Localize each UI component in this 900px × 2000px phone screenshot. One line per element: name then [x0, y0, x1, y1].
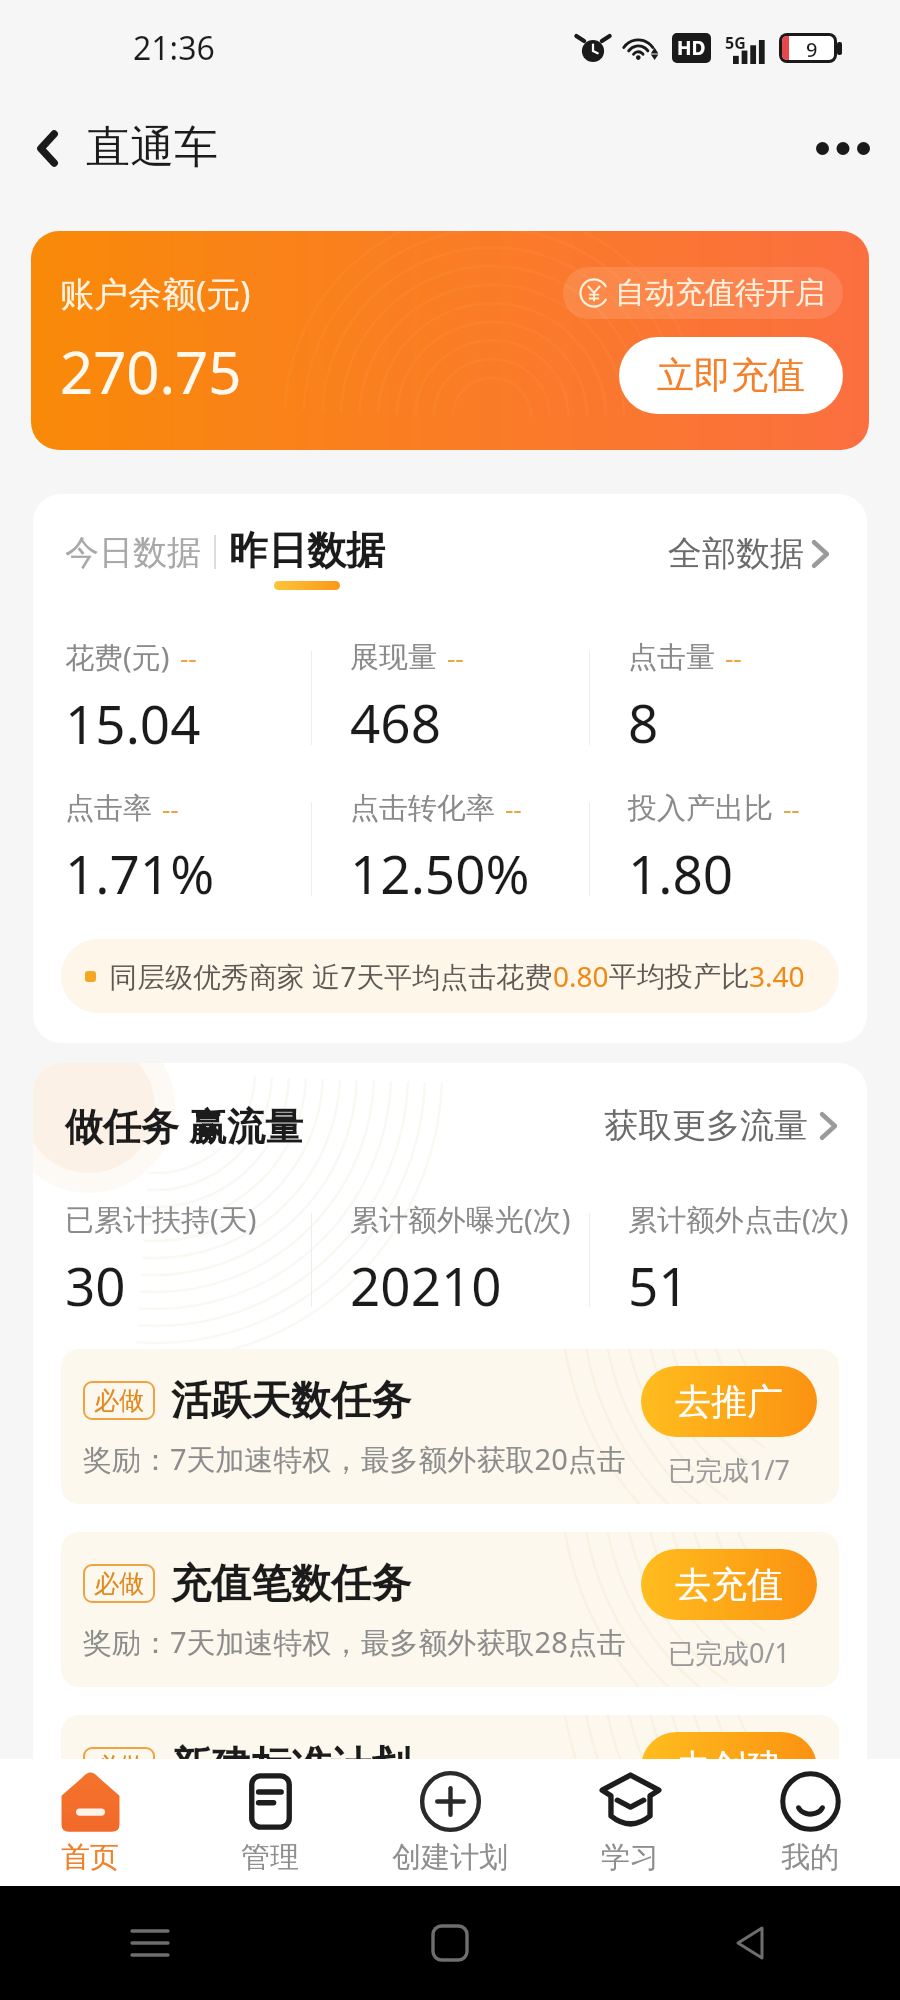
staticText: 花费(元)	[65, 637, 170, 677]
button[interactable]: More options	[808, 113, 878, 183]
staticText: --	[180, 640, 197, 675]
staticText: 平均投产比	[609, 959, 749, 994]
staticText: 点击量	[628, 639, 715, 676]
staticText: 9	[806, 36, 818, 60]
staticText: 1.71%	[65, 837, 215, 909]
button[interactable]: 去推广	[641, 1366, 817, 1437]
button[interactable]: 管理	[180, 1759, 360, 1886]
staticText: 20210	[350, 1249, 502, 1321]
staticText: 51	[628, 1249, 689, 1321]
staticText: 必做	[94, 1751, 144, 1782]
button[interactable]: 同层级优秀商家 近7天平均点击花费	[61, 939, 839, 1013]
button[interactable]: 账户余额(元)	[31, 231, 869, 450]
staticText: 管理	[241, 1839, 299, 1876]
staticText: 累计额外曝光(次)	[350, 1199, 571, 1239]
button[interactable]: 我的	[720, 1759, 900, 1886]
staticText: 1.80	[628, 837, 734, 909]
staticText: 去推广	[675, 1379, 783, 1424]
button[interactable]: Recents	[0, 1886, 300, 2000]
staticText: 投入产出比	[628, 790, 773, 827]
staticText: 创建计划	[392, 1839, 508, 1876]
staticText: 已累计扶持(天)	[65, 1199, 257, 1239]
staticText: 3.40	[749, 957, 805, 995]
button[interactable]: Back	[16, 117, 78, 179]
staticText: 学习	[601, 1839, 659, 1876]
staticText: HD	[677, 35, 706, 61]
staticText: 点击转化率	[350, 790, 495, 827]
button[interactable]: 创建计划	[360, 1759, 540, 1886]
button[interactable]: 首页	[0, 1759, 180, 1886]
button[interactable]: Home	[300, 1886, 600, 2000]
button[interactable]: 获取更多流量	[604, 1104, 837, 1147]
staticText: 新建标准计划	[171, 1741, 411, 1791]
button[interactable]: 必做	[61, 1715, 839, 1870]
button[interactable]: 学习	[540, 1759, 720, 1886]
staticText: 自动充值待开启	[615, 274, 825, 312]
staticText: 我的	[781, 1839, 839, 1876]
staticText: 首页	[61, 1839, 119, 1876]
staticText: 12.50%	[350, 837, 530, 909]
staticText: 已完成0/1	[668, 1634, 790, 1671]
staticText: 展现量	[350, 639, 437, 676]
staticText: 今日数据	[65, 531, 201, 574]
staticText: 30	[65, 1249, 126, 1321]
button[interactable]: 必做	[61, 1532, 839, 1687]
staticText: 累计额外点击(次)	[628, 1199, 849, 1239]
staticText: 充值笔数任务	[171, 1558, 411, 1608]
button[interactable]: 全部数据	[668, 532, 837, 590]
staticText: 同层级优秀商家 近7天平均点击花费	[109, 957, 553, 995]
staticText: 必做	[94, 1385, 144, 1416]
staticText: 8	[628, 686, 659, 758]
staticText: --	[725, 640, 742, 675]
staticText: 15.04	[65, 687, 201, 759]
button[interactable]: 去充值	[641, 1549, 817, 1620]
button[interactable]: 今日数据	[65, 531, 201, 590]
staticText: 活跃天数任务	[171, 1375, 411, 1425]
staticText: 去充值	[675, 1562, 783, 1607]
staticText: --	[162, 791, 179, 826]
button[interactable]: Back	[600, 1886, 900, 2000]
staticText: 奖励：7天加速特权，最多额外获取20点击	[83, 1439, 626, 1479]
staticText: 奖励：7天加速特权，最多额外获取28点击	[83, 1622, 626, 1662]
staticText: 做任务 赢流量	[65, 1099, 303, 1151]
staticText: 获取更多流量	[604, 1104, 808, 1147]
staticText: 立即充值	[657, 352, 805, 399]
staticText: 21:36	[133, 26, 215, 70]
staticText: 468	[350, 686, 441, 758]
staticText: 必做	[94, 1568, 144, 1599]
button[interactable]: 必做	[61, 1349, 839, 1504]
staticText: 昨日数据	[229, 526, 385, 575]
button[interactable]: 立即充值	[619, 337, 843, 414]
staticText: 已完成0/1	[668, 1817, 790, 1854]
staticText: 0.80	[553, 957, 609, 995]
staticText: 直通车	[86, 120, 218, 175]
staticText: 去创建	[675, 1745, 783, 1790]
staticText: 奖励：7天加速特权，最多额外获取20点击	[83, 1805, 626, 1845]
staticText: 全部数据	[668, 532, 804, 575]
staticText: --	[447, 640, 464, 675]
staticText: 账户余额(元)	[60, 270, 251, 316]
button[interactable]: 自动充值待开启	[563, 267, 843, 319]
staticText: --	[505, 791, 522, 826]
staticText: --	[783, 791, 800, 826]
staticText: 270.75	[60, 332, 242, 411]
button[interactable]: 昨日数据	[229, 526, 385, 590]
staticText: 点击率	[65, 790, 152, 827]
staticText: 已完成1/7	[668, 1451, 790, 1488]
button[interactable]: 去创建	[641, 1732, 817, 1803]
staticText: 5G	[725, 32, 746, 54]
